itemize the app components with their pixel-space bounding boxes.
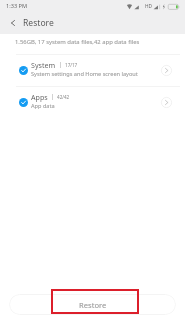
- staticText: System: [31, 60, 56, 70]
- staticText: Restore: [79, 300, 107, 310]
- staticText: Apps: [31, 92, 48, 102]
- button[interactable]: Details: [161, 97, 172, 108]
- button[interactable]: Details: [161, 65, 172, 76]
- staticText: App data: [31, 102, 55, 110]
- button[interactable]: Restore: [9, 294, 176, 315]
- staticText: 17/17: [65, 62, 78, 68]
- staticText: Restore: [23, 17, 54, 29]
- button[interactable]: Back: [2, 12, 24, 34]
- staticText: HD: [145, 3, 153, 10]
- button[interactable]: Apps: [0, 87, 185, 118]
- staticText: 1:33 PM: [6, 2, 28, 10]
- staticText: System settings and Home screen layout: [31, 70, 138, 78]
- staticText: 1.56GB, 17 system data files,42 app data…: [15, 38, 140, 46]
- staticText: 42/42: [57, 94, 70, 100]
- button[interactable]: System: [0, 55, 185, 86]
